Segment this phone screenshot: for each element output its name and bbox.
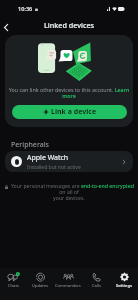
staticText: 10:36 — [18, 5, 33, 13]
button[interactable]: Settings — [110, 268, 138, 300]
staticText: Settings — [116, 283, 132, 289]
staticText: Peripherals — [11, 140, 50, 150]
button[interactable]: Link a device — [12, 105, 127, 119]
button[interactable]: Calls — [82, 268, 110, 300]
button[interactable]: Back — [0, 20, 13, 35]
button[interactable]: Apple Watch — [5, 151, 133, 172]
staticText: Apple Watch — [27, 153, 69, 163]
button[interactable]: Communities — [54, 268, 82, 300]
button[interactable]: Chats — [0, 268, 27, 300]
staticText: Updates — [32, 283, 49, 289]
staticText: Link a device — [51, 107, 97, 117]
staticText: Linked devices — [44, 20, 95, 30]
staticText: Installed but not active — [27, 164, 81, 171]
staticText: Chats — [8, 283, 19, 289]
staticText: You can link other devices to this accou… — [6, 86, 132, 100]
button[interactable]: Updates — [27, 268, 54, 300]
staticText: Your personal messages are end-to-end en… — [2, 182, 136, 201]
staticText: Communities — [55, 283, 81, 289]
staticText: Calls — [92, 283, 101, 289]
